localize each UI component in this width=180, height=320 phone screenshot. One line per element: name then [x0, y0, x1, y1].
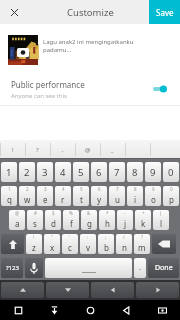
button[interactable]: . — [134, 258, 146, 278]
button[interactable]: 2 — [19, 186, 35, 206]
staticText: m — [138, 242, 146, 253]
button[interactable]: + — [135, 210, 151, 230]
button[interactable]: Home — [72, 300, 108, 320]
staticText: h — [105, 218, 110, 229]
button[interactable]: ( — [153, 210, 169, 230]
staticText: f — [70, 218, 73, 229]
button[interactable]: Back — [108, 300, 144, 320]
staticText: _ — [111, 146, 114, 154]
staticText: Save — [156, 7, 174, 18]
staticText: 0 — [168, 166, 174, 179]
button[interactable]: ? — [25, 140, 50, 159]
staticText: Public performance — [11, 79, 85, 90]
button[interactable]: ; — [98, 234, 114, 254]
staticText: x — [50, 242, 55, 253]
staticText: 4 — [62, 186, 65, 192]
staticText: : — [87, 234, 89, 240]
button[interactable]: _ — [100, 140, 125, 159]
button[interactable]: Recents — [0, 300, 36, 320]
button[interactable]: # — [27, 210, 43, 230]
staticText: 6 — [96, 166, 102, 179]
button[interactable]: 2 — [19, 162, 35, 182]
button[interactable]: 8 — [127, 162, 143, 182]
staticText: w — [24, 194, 31, 205]
button[interactable]: ! — [0, 140, 25, 159]
staticText: l — [160, 218, 163, 229]
button[interactable]: : — [80, 234, 96, 254]
staticText: 7 — [116, 186, 119, 192]
button[interactable]: 1 — [1, 162, 17, 182]
button[interactable]: 5 — [73, 186, 89, 206]
button[interactable]: 1 — [1, 186, 17, 206]
staticText: Customize — [67, 6, 114, 19]
button[interactable]: ?123 — [1, 258, 23, 278]
button[interactable]: Voice input — [25, 258, 43, 278]
staticText: 8 — [134, 186, 137, 192]
button[interactable]: 6 — [91, 186, 107, 206]
button[interactable]: , — [50, 140, 75, 159]
button[interactable]: / — [116, 234, 132, 254]
button[interactable]: Save — [149, 0, 180, 24]
button[interactable]: Backspace — [152, 234, 176, 254]
staticText: 5 — [80, 186, 83, 192]
button[interactable]: * — [99, 210, 115, 230]
button[interactable]: - — [117, 210, 133, 230]
button[interactable]: $ — [45, 210, 61, 230]
button[interactable]: @ — [75, 140, 100, 159]
button[interactable]: 0 — [163, 186, 179, 206]
button[interactable]: 0 — [163, 162, 179, 182]
button[interactable]: Move left — [91, 282, 134, 298]
button[interactable]: Space — [45, 258, 132, 278]
button[interactable]: 5 — [73, 162, 89, 182]
staticText: r — [61, 194, 65, 205]
button[interactable]: 9 — [145, 162, 161, 182]
button[interactable]: 9 — [145, 186, 161, 206]
staticText: ( — [160, 210, 162, 216]
staticText: 2 — [26, 186, 29, 192]
button[interactable]: 8 — [127, 186, 143, 206]
staticText: 3 — [42, 166, 48, 179]
button[interactable]: Shift — [1, 234, 24, 254]
button[interactable]: 4 — [55, 186, 71, 206]
button[interactable]: @ — [9, 210, 25, 230]
button[interactable]: & — [81, 210, 97, 230]
staticText: ?123 — [6, 264, 19, 272]
staticText: 1 — [8, 186, 11, 192]
staticText: + — [142, 210, 145, 216]
button[interactable]: ! — [26, 234, 42, 254]
button[interactable]: 4 — [55, 162, 71, 182]
button[interactable]: % — [63, 210, 79, 230]
button[interactable]: Done — [148, 258, 179, 278]
staticText: n — [122, 242, 127, 253]
staticText: 5 — [78, 166, 84, 179]
button[interactable]: Move down — [46, 282, 89, 298]
staticText: ! — [33, 234, 35, 240]
button[interactable]: ' — [62, 234, 78, 254]
button[interactable]: 7 — [109, 186, 125, 206]
button[interactable]: ? — [134, 234, 150, 254]
staticText: b — [104, 242, 109, 253]
button[interactable]: Close — [0, 0, 26, 24]
button[interactable]: Public performance — [0, 73, 180, 105]
staticText: " — [51, 234, 53, 240]
button[interactable]: Screenshot — [144, 300, 180, 320]
staticText: q — [7, 194, 12, 205]
staticText: Anyone can see this — [11, 92, 67, 100]
staticText: z — [32, 242, 36, 253]
staticText: ' — [69, 234, 71, 240]
button[interactable] — [125, 140, 150, 159]
button[interactable]: 7 — [109, 162, 125, 182]
button[interactable]: Hide keyboard — [36, 300, 72, 320]
staticText: , — [62, 146, 64, 154]
button[interactable]: 6 — [91, 162, 107, 182]
button[interactable]: Move up — [1, 282, 44, 298]
button[interactable] — [150, 140, 175, 159]
staticText: s — [33, 218, 37, 229]
button[interactable]: 3 — [37, 162, 53, 182]
staticText: $ — [52, 210, 55, 216]
button[interactable]: 3 — [37, 186, 53, 206]
button[interactable]: Public performance toggle — [153, 84, 167, 94]
button[interactable]: Move right — [136, 282, 179, 298]
button[interactable]: " — [44, 234, 60, 254]
staticText: c — [68, 242, 72, 253]
